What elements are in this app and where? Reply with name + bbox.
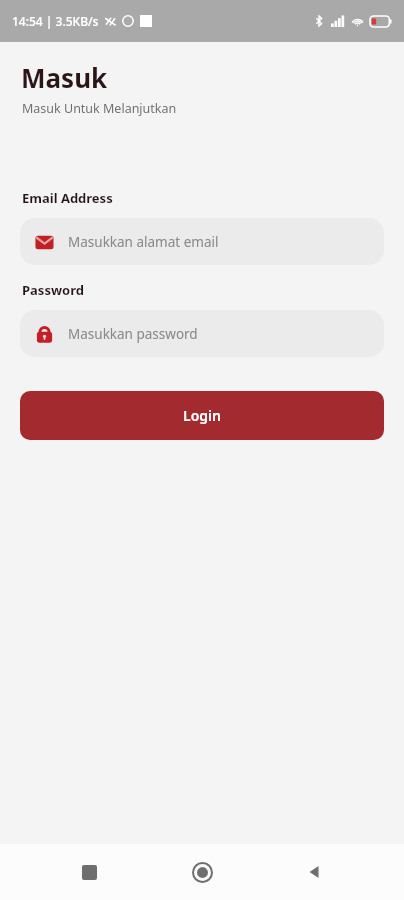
staticText: Masuk Untuk Melanjutkan <box>22 100 177 117</box>
staticText: Password <box>22 281 84 299</box>
staticText: Login <box>183 406 221 425</box>
button[interactable]: Recent apps <box>65 848 113 896</box>
staticText: 14:54 | 3.5KB/s <box>12 13 99 29</box>
staticText: Masuk <box>21 60 108 95</box>
staticText: Email Address <box>22 189 113 207</box>
button[interactable]: Masukkan alamat email <box>20 218 384 265</box>
button[interactable]: Home <box>178 848 226 896</box>
staticText: Masukkan alamat email <box>68 233 219 251</box>
button[interactable]: Back <box>291 848 339 896</box>
button[interactable]: Login <box>20 391 384 440</box>
staticText: Masukkan password <box>68 325 198 343</box>
button[interactable]: Masukkan password <box>20 310 384 357</box>
